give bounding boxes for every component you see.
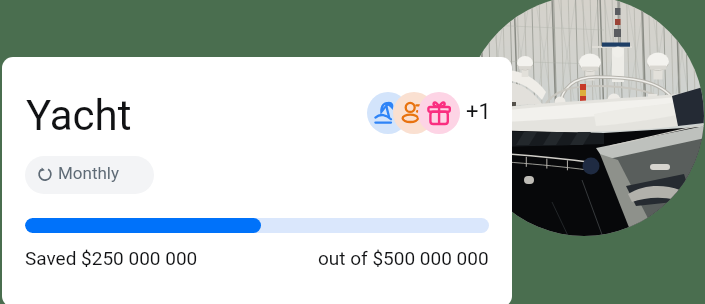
staticText: out of $500 000 000 <box>318 247 489 269</box>
staticText: Saved $250 000 000 <box>25 247 198 269</box>
button[interactable]: Member <box>367 92 409 134</box>
staticText: Yacht <box>26 91 132 140</box>
button[interactable]: Yacht <box>2 57 512 304</box>
button[interactable]: Yacht photo <box>464 0 704 236</box>
button[interactable]: Member <box>418 92 460 134</box>
button[interactable]: Monthly <box>25 156 154 194</box>
button[interactable]: Member <box>393 92 435 134</box>
staticText: +1 <box>466 99 491 125</box>
staticText: Monthly <box>58 163 120 183</box>
